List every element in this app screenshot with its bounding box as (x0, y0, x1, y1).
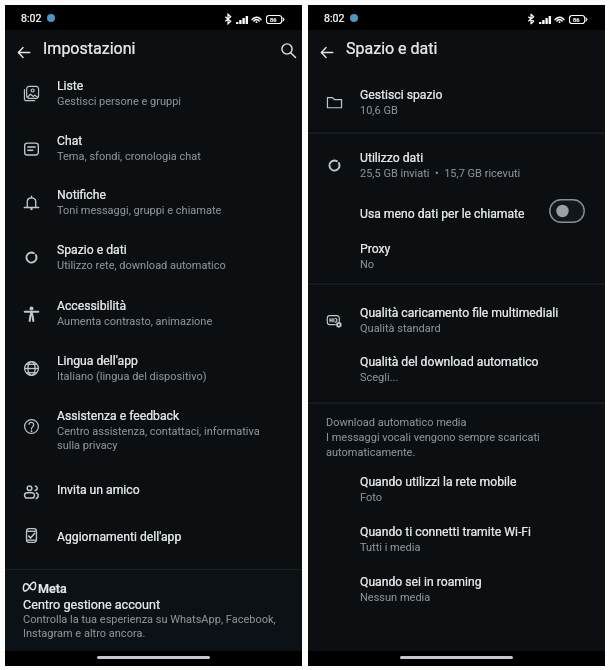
staticText: Spazio e dati (57, 243, 127, 257)
staticText: Assistenza e feedback (57, 409, 180, 423)
button[interactable]: Assistenza e feedback (5, 405, 302, 451)
button[interactable]: Qualità caricamento file multimediali (308, 302, 605, 338)
staticText: Tema, sfondi, cronologia chat (57, 150, 201, 163)
staticText: Chat (57, 134, 83, 148)
button[interactable]: Chat (5, 130, 302, 166)
staticText: Nessun media (360, 591, 431, 604)
staticText: sulla privacy (57, 439, 118, 452)
button[interactable]: Quando ti connetti tramite Wi-Fi (308, 521, 605, 557)
staticText: Controlla la tua esperienza su WhatsApp,… (23, 613, 276, 640)
button[interactable]: Back (312, 36, 342, 66)
staticText: Meta (38, 581, 67, 596)
staticText: Tutti i media (360, 541, 421, 554)
staticText: Download automatico media I messaggi voc… (326, 416, 540, 459)
staticText: Toni messaggi, gruppi e chiamate (57, 204, 222, 217)
staticText: Qualità standard (360, 322, 441, 335)
staticText: Lingua dell'app (57, 354, 138, 368)
staticText: Impostazioni (43, 39, 136, 58)
button[interactable]: Quando sei in roaming (308, 571, 605, 607)
staticText: No (360, 258, 375, 271)
button[interactable]: Spazio e dati (5, 239, 302, 275)
staticText: Accessibilità (57, 299, 127, 313)
button[interactable]: Accessibilità (5, 295, 302, 331)
button[interactable]: Utilizzo dati (308, 147, 605, 183)
staticText: 8:02 (21, 12, 42, 24)
staticText: Quando sei in roaming (360, 575, 482, 589)
staticText: Proxy (360, 242, 391, 256)
staticText: Utilizzo dati (360, 151, 424, 165)
staticText: Centro assistenza, contattaci, informati… (57, 425, 260, 438)
staticText: Gestisci persone e gruppi (57, 95, 181, 108)
button[interactable]: Back (9, 36, 39, 66)
staticText: 86 (270, 17, 277, 24)
button[interactable]: Notifiche (5, 184, 302, 220)
staticText: Quando ti connetti tramite Wi-Fi (360, 525, 531, 539)
staticText: 8:02 (324, 12, 345, 24)
staticText: Quando utilizzi la rete mobile (360, 475, 517, 489)
staticText: Italiano (lingua del dispositivo) (57, 370, 207, 383)
button[interactable]: Lingua dell'app (5, 350, 302, 386)
staticText: Utilizzo rete, download automatico (57, 259, 226, 272)
staticText: Spazio e dati (346, 39, 438, 58)
button[interactable]: Proxy (308, 238, 605, 274)
staticText: Usa meno dati per le chiamate (360, 207, 525, 221)
staticText: Scegli... (360, 371, 399, 384)
staticText: Foto (360, 491, 383, 504)
staticText: Liste (57, 79, 84, 93)
button[interactable]: Usa meno dati per le chiamate (308, 203, 605, 230)
button[interactable]: Invita un amico (5, 479, 302, 501)
staticText: 10,6 GB (360, 104, 398, 117)
staticText: Centro gestione account (23, 597, 161, 612)
staticText: 86 (573, 17, 580, 24)
button[interactable]: Gestisci spazio (308, 84, 605, 120)
button[interactable]: Meta (5, 570, 302, 651)
button[interactable]: Qualità del download automatico (308, 351, 605, 387)
staticText: Qualità caricamento file multimediali (360, 306, 559, 320)
staticText: Invita un amico (57, 483, 140, 497)
button[interactable]: Aggiornamenti dell'app (5, 526, 302, 548)
staticText: Notifiche (57, 188, 106, 202)
staticText: Aggiornamenti dell'app (57, 530, 182, 544)
button[interactable]: Liste (5, 75, 302, 111)
button[interactable]: Quando utilizzi la rete mobile (308, 471, 605, 507)
staticText: Gestisci spazio (360, 88, 443, 102)
staticText: Qualità del download automatico (360, 355, 539, 369)
button[interactable]: Search (273, 35, 303, 65)
staticText: 25,5 GB inviati • 15,7 GB ricevuti (360, 167, 521, 180)
staticText: Aumenta contrasto, animazione (57, 315, 213, 328)
